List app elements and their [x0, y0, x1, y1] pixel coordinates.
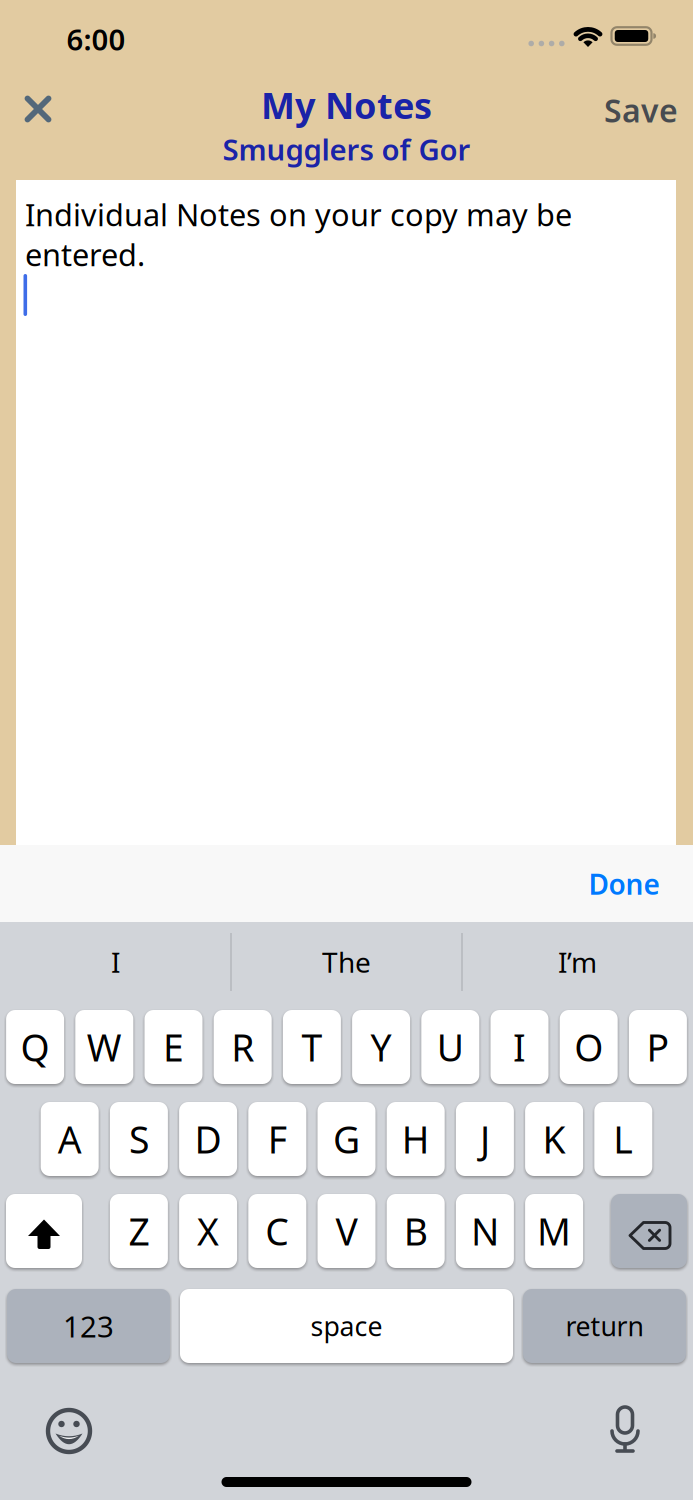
button[interactable]: E — [144, 1010, 202, 1084]
button[interactable]: O — [560, 1010, 618, 1084]
button[interactable]: T — [283, 1010, 341, 1084]
staticText: I — [111, 943, 120, 981]
button[interactable]: X — [179, 1194, 237, 1268]
button[interactable]: U — [421, 1010, 479, 1084]
button[interactable]: Dictate — [609, 1406, 641, 1454]
staticText: N — [471, 1206, 499, 1256]
button[interactable]: V — [317, 1194, 375, 1268]
staticText: Q — [21, 1022, 50, 1072]
staticText: C — [265, 1206, 289, 1256]
staticText: K — [543, 1114, 566, 1164]
staticText: O — [574, 1022, 603, 1072]
staticText: X — [197, 1206, 219, 1256]
button[interactable]: I’m — [467, 927, 687, 997]
button[interactable]: L — [594, 1102, 652, 1176]
button[interactable]: N — [456, 1194, 514, 1268]
button[interactable]: I — [5, 927, 225, 997]
staticText: Smugglers of Gor — [222, 129, 470, 168]
staticText: W — [87, 1022, 122, 1072]
staticText: space — [310, 1308, 382, 1344]
staticText: entered. — [25, 234, 145, 275]
staticText: 6:00 — [66, 19, 125, 58]
staticText: My Notes — [261, 81, 432, 129]
staticText: J — [480, 1114, 490, 1164]
button[interactable]: J — [456, 1102, 514, 1176]
staticText: Individual Notes on your copy may be — [25, 194, 572, 235]
button[interactable]: D — [179, 1102, 237, 1176]
button[interactable]: R — [214, 1010, 272, 1084]
button[interactable]: Close — [22, 93, 53, 124]
button[interactable]: W — [75, 1010, 133, 1084]
staticText: Done — [588, 865, 659, 903]
staticText: A — [58, 1114, 82, 1164]
button[interactable]: return — [523, 1289, 686, 1363]
staticText: D — [195, 1114, 222, 1164]
staticText: E — [163, 1022, 184, 1072]
button[interactable]: 123 — [7, 1289, 170, 1363]
staticText: P — [646, 1022, 669, 1072]
button[interactable]: A — [41, 1102, 99, 1176]
button[interactable]: K — [525, 1102, 583, 1176]
staticText: The — [322, 943, 371, 981]
button[interactable]: Save — [604, 89, 678, 131]
staticText: U — [437, 1022, 464, 1072]
button[interactable]: S — [110, 1102, 168, 1176]
button[interactable]: P — [629, 1010, 687, 1084]
staticText: F — [268, 1114, 287, 1164]
button[interactable]: B — [387, 1194, 445, 1268]
button[interactable]: Done — [588, 865, 659, 903]
button[interactable]: F — [248, 1102, 306, 1176]
staticText: return — [565, 1308, 643, 1344]
button[interactable]: Emoji — [46, 1408, 92, 1454]
button[interactable]: Delete — [611, 1194, 687, 1268]
staticText: M — [537, 1206, 571, 1256]
button[interactable]: space — [180, 1289, 513, 1363]
staticText: Z — [128, 1206, 149, 1256]
staticText: T — [301, 1022, 322, 1072]
staticText: I’m — [558, 943, 597, 981]
staticText: 123 — [63, 1306, 114, 1345]
staticText: Save — [604, 89, 678, 131]
button[interactable]: G — [317, 1102, 375, 1176]
button[interactable]: C — [248, 1194, 306, 1268]
staticText: R — [231, 1022, 254, 1072]
button[interactable]: Q — [6, 1010, 64, 1084]
staticText: G — [333, 1114, 360, 1164]
staticText: L — [613, 1114, 633, 1164]
button[interactable]: Y — [352, 1010, 410, 1084]
button[interactable]: H — [387, 1102, 445, 1176]
button[interactable]: M — [525, 1194, 583, 1268]
button[interactable]: The — [236, 927, 456, 997]
button[interactable]: I — [490, 1010, 548, 1084]
staticText: H — [402, 1114, 430, 1164]
staticText: S — [129, 1114, 149, 1164]
staticText: I — [513, 1022, 526, 1072]
button[interactable]: Shift — [6, 1194, 82, 1268]
staticText: Y — [371, 1022, 392, 1072]
staticText: V — [335, 1206, 357, 1256]
staticText: B — [404, 1206, 428, 1256]
button[interactable]: Z — [110, 1194, 168, 1268]
